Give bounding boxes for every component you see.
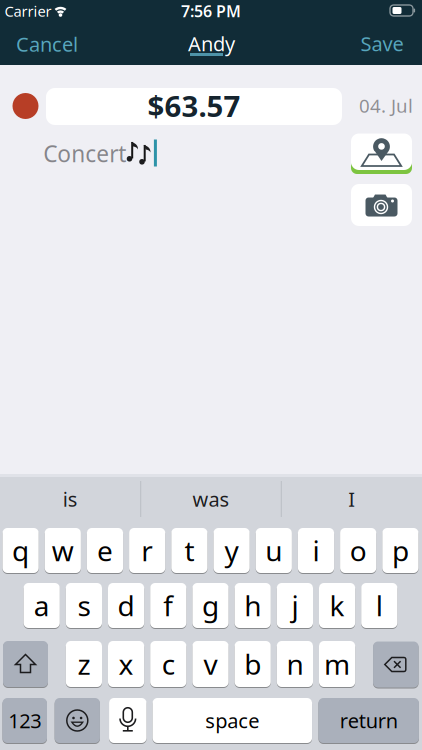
staticText: 123 (8, 707, 41, 734)
button[interactable]: e (87, 528, 123, 573)
staticText: r (141, 532, 153, 569)
button[interactable]: Save (360, 30, 403, 57)
button[interactable]: x (108, 641, 144, 687)
button[interactable]: m (319, 641, 355, 687)
staticText: Save (360, 30, 403, 57)
staticText: Cancel (16, 31, 78, 57)
button[interactable]: j (277, 583, 313, 628)
staticText: g (202, 587, 219, 624)
staticText: i (312, 532, 319, 569)
button[interactable]: a (24, 583, 60, 628)
staticText: v (203, 645, 217, 683)
button[interactable]: s (66, 583, 102, 628)
staticText: u (265, 532, 282, 569)
staticText: return (340, 707, 398, 734)
button[interactable]: n (277, 641, 313, 687)
staticText: q (12, 532, 29, 569)
staticText: I (348, 486, 355, 512)
button[interactable]: u (256, 528, 292, 573)
button[interactable]: y (213, 528, 250, 573)
button[interactable]: Emoji (55, 698, 100, 743)
button[interactable]: z (66, 641, 102, 687)
button[interactable]: h (235, 583, 271, 628)
button[interactable]: d (108, 583, 144, 628)
staticText: is (63, 486, 78, 512)
button[interactable]: Delete (373, 641, 419, 687)
staticText: Carrier (4, 1, 51, 21)
staticText: b (244, 645, 261, 683)
staticText: s (77, 587, 90, 624)
button[interactable]: return (318, 698, 419, 743)
button[interactable]: is (5, 479, 135, 519)
button[interactable]: b (235, 641, 271, 687)
staticText: f (163, 587, 173, 624)
button[interactable]: f (150, 583, 186, 628)
staticText: 7:56 PM (181, 0, 241, 22)
staticText: Andy (188, 30, 235, 57)
button[interactable]: t (171, 528, 207, 573)
staticText: e (97, 532, 113, 569)
staticText: a (34, 587, 50, 624)
staticText: 04. Jul (359, 93, 413, 118)
staticText: $63.57 (147, 86, 240, 125)
staticText: space (205, 707, 259, 734)
staticText: k (330, 587, 345, 624)
button[interactable]: w (45, 528, 81, 573)
button[interactable]: Shift (3, 641, 48, 687)
button[interactable]: r (129, 528, 165, 573)
button[interactable]: v (192, 641, 229, 687)
staticText: c (162, 645, 175, 683)
staticText: was (192, 486, 229, 512)
button[interactable]: p (382, 528, 418, 573)
button[interactable]: 123 (2, 698, 47, 743)
staticText: t (184, 532, 194, 569)
button[interactable]: i (298, 528, 334, 573)
button[interactable]: Camera (351, 184, 412, 226)
button[interactable]: was (146, 479, 276, 519)
staticText: x (119, 645, 134, 683)
staticText: Concert (43, 138, 126, 168)
button[interactable]: space (153, 698, 312, 743)
button[interactable]: I (287, 479, 417, 519)
button[interactable]: c (150, 641, 186, 687)
staticText: w (52, 532, 74, 569)
button[interactable]: Location (351, 133, 412, 174)
button[interactable]: Dictate (109, 698, 146, 743)
staticText: y (225, 532, 239, 569)
staticText: h (244, 587, 261, 624)
button[interactable]: o (340, 528, 376, 573)
button[interactable]: k (319, 583, 355, 628)
button[interactable]: q (2, 528, 39, 573)
staticText: p (392, 532, 409, 569)
staticText: o (350, 532, 367, 569)
staticText: l (376, 587, 383, 624)
staticText: d (118, 587, 135, 624)
staticText: m (324, 645, 350, 683)
button[interactable]: l (361, 583, 397, 628)
staticText: j (291, 587, 298, 624)
staticText: n (286, 645, 303, 683)
staticText: z (77, 645, 90, 683)
button[interactable]: Cancel (16, 31, 78, 57)
button[interactable]: g (192, 583, 229, 628)
